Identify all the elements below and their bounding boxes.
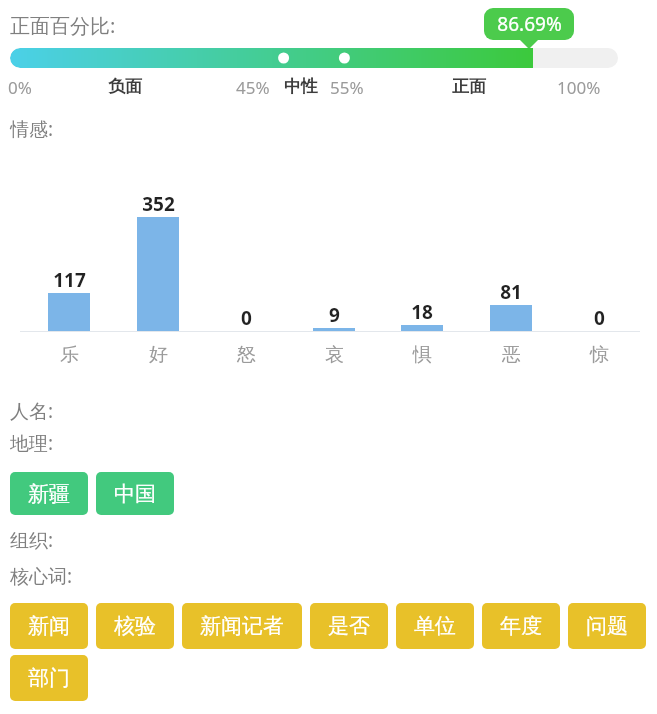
button[interactable] xyxy=(10,48,618,68)
staticText: 新闻 xyxy=(28,613,70,639)
staticText: 正面百分比: xyxy=(10,12,116,39)
button[interactable]: 新闻记者 xyxy=(182,603,302,649)
staticText: 0% xyxy=(8,76,32,99)
staticText: 中国 xyxy=(114,481,156,507)
button[interactable]: 是否 xyxy=(310,603,388,649)
staticText: 情感: xyxy=(10,116,54,142)
staticText: 部门 xyxy=(28,665,70,691)
staticText: 0 xyxy=(241,305,252,331)
staticText: 单位 xyxy=(414,613,456,639)
staticText: 怒 xyxy=(237,343,256,367)
staticText: 惊 xyxy=(590,343,609,367)
staticText: 352 xyxy=(142,191,175,217)
staticText: 负面 xyxy=(108,76,142,97)
staticText: 哀 xyxy=(325,343,344,367)
staticText: 新疆 xyxy=(28,481,70,507)
staticText: 9 xyxy=(329,302,340,328)
staticText: 人名: xyxy=(10,398,54,424)
staticText: 45% xyxy=(236,76,270,99)
staticText: 86.69% xyxy=(497,11,562,37)
button[interactable]: 年度 xyxy=(482,603,560,649)
staticText: 好 xyxy=(149,343,168,367)
staticText: 年度 xyxy=(500,613,542,639)
staticText: 中性 xyxy=(284,76,318,97)
staticText: 117 xyxy=(53,267,86,293)
staticText: 18 xyxy=(411,299,433,325)
staticText: 惧 xyxy=(413,343,432,367)
staticText: 核验 xyxy=(114,613,156,639)
staticText: 100% xyxy=(557,76,601,99)
staticText: 新闻记者 xyxy=(200,613,284,639)
button[interactable]: 中国 xyxy=(96,472,174,515)
button[interactable]: 核验 xyxy=(96,603,174,649)
staticText: 0 xyxy=(594,305,605,331)
button[interactable]: 86.69% xyxy=(484,8,574,40)
button[interactable]: 单位 xyxy=(396,603,474,649)
button[interactable]: 新闻 xyxy=(10,603,88,649)
staticText: 55% xyxy=(330,76,364,99)
staticText: 组织: xyxy=(10,527,54,553)
staticText: 乐 xyxy=(60,343,79,367)
staticText: 核心词: xyxy=(10,563,73,589)
staticText: 81 xyxy=(500,279,522,305)
button[interactable]: 部门 xyxy=(10,655,88,701)
staticText: 正面 xyxy=(452,76,486,97)
button[interactable]: 新疆 xyxy=(10,472,88,515)
button[interactable]: 问题 xyxy=(568,603,646,649)
staticText: 地理: xyxy=(10,430,54,456)
staticText: 是否 xyxy=(328,613,370,639)
staticText: 恶 xyxy=(502,343,521,367)
staticText: 问题 xyxy=(586,613,628,639)
